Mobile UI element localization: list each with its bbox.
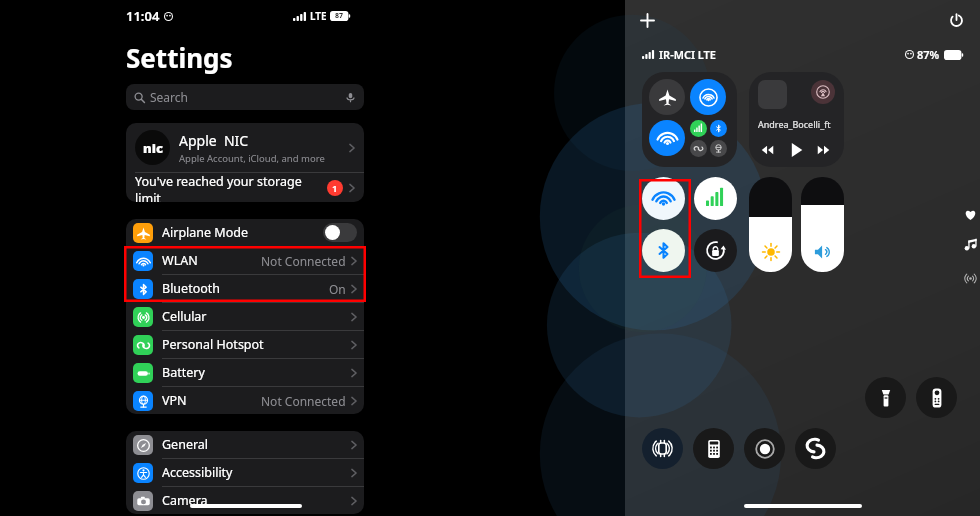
button[interactable]: General (126, 431, 364, 458)
button[interactable]: Apple TV Remote (916, 377, 957, 418)
button[interactable]: Power off (950, 14, 963, 27)
button[interactable]: AirPlay (749, 72, 844, 167)
staticText: Airplane Mode (162, 224, 323, 241)
button[interactable]: Search (126, 84, 364, 110)
staticText: Search (150, 89, 188, 105)
staticText: Camera (162, 492, 351, 509)
button[interactable]: Accessibility (126, 459, 364, 486)
staticText: Bluetooth (162, 280, 329, 297)
button[interactable]: Flashlight (865, 377, 906, 418)
button[interactable]: AirDrop (690, 79, 726, 115)
staticText: Battery (162, 364, 351, 381)
button[interactable]: Airplane Mode (126, 219, 364, 246)
button[interactable]: Previous (760, 142, 776, 158)
staticText: VPN (162, 392, 261, 409)
button[interactable]: WLAN (126, 247, 364, 274)
button[interactable]: Volume (801, 177, 844, 272)
staticText: On (329, 281, 346, 297)
button[interactable]: Bluetooth (126, 275, 364, 302)
staticText: 87 (335, 11, 344, 21)
staticText: Accessibility (162, 464, 351, 481)
button[interactable]: Favorite (964, 208, 977, 221)
staticText: You've reached your storage limit (135, 173, 327, 202)
staticText: 87% (917, 47, 940, 62)
button[interactable]: Airplane Mode (649, 79, 685, 115)
button[interactable]: VPN (126, 387, 364, 414)
button[interactable]: AirPlay (811, 80, 835, 104)
button[interactable]: Music (964, 238, 977, 251)
staticText: nic (143, 139, 163, 157)
staticText: Settings (126, 40, 233, 75)
staticText: Not Connected (261, 253, 346, 269)
button[interactable]: Wi-Fi (642, 177, 685, 220)
staticText: LTE (310, 9, 327, 23)
button[interactable]: Airplane Mode toggle (323, 223, 357, 242)
button[interactable]: You've reached your storage limit (126, 173, 364, 202)
button[interactable]: Brightness (749, 177, 792, 272)
staticText: Cellular (162, 308, 351, 325)
button[interactable]: Bluetooth (642, 229, 685, 272)
button[interactable]: Cellular Data (694, 177, 737, 220)
staticText: Andrea_Bocelli_ft (758, 118, 831, 130)
staticText: 11:04 (126, 7, 160, 25)
button[interactable]: Calculator (693, 428, 734, 469)
button[interactable]: Next (816, 142, 832, 158)
staticText: 1 (332, 182, 338, 195)
button[interactable]: Screen Recording (744, 428, 785, 469)
button[interactable]: Cellular Data (690, 120, 707, 137)
button[interactable]: Add a control (641, 14, 654, 27)
button[interactable]: Connectivity (964, 272, 977, 285)
button[interactable]: Rotation Lock (694, 229, 737, 272)
button[interactable]: Camera (126, 487, 364, 514)
button[interactable]: Ping My Watch (642, 428, 683, 469)
staticText: Not Connected (261, 393, 346, 409)
button[interactable]: Bluetooth (710, 120, 727, 137)
staticText: Apple NIC (179, 131, 249, 150)
staticText: General (162, 436, 351, 453)
button[interactable]: Wi-Fi (649, 120, 685, 156)
staticText: Apple Account, iCloud, and more (179, 152, 325, 165)
staticText: IR-MCI LTE (659, 47, 717, 62)
staticText: Personal Hotspot (162, 336, 351, 353)
staticText: WLAN (162, 252, 261, 269)
button[interactable]: VPN (710, 140, 727, 157)
button[interactable]: Cellular (126, 303, 364, 330)
button[interactable]: Battery (126, 359, 364, 386)
button[interactable]: Personal Hotspot (690, 140, 707, 157)
button[interactable]: Personal Hotspot (126, 331, 364, 358)
button[interactable]: Play (789, 143, 803, 157)
button[interactable]: Shazam (795, 428, 836, 469)
button[interactable]: nic (126, 123, 364, 172)
